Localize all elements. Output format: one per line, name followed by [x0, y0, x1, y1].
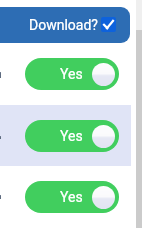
staticText: Download?	[29, 17, 98, 33]
button[interactable]: Download?	[0, 7, 130, 43]
button[interactable]: Download checkbox	[101, 17, 116, 32]
button[interactable]: Yes	[25, 58, 119, 90]
staticText: Yes	[60, 66, 83, 82]
staticText: Yes	[60, 128, 83, 144]
button[interactable]: Yes	[25, 120, 119, 152]
button[interactable]: Yes	[25, 181, 119, 213]
staticText: Yes	[60, 189, 83, 205]
